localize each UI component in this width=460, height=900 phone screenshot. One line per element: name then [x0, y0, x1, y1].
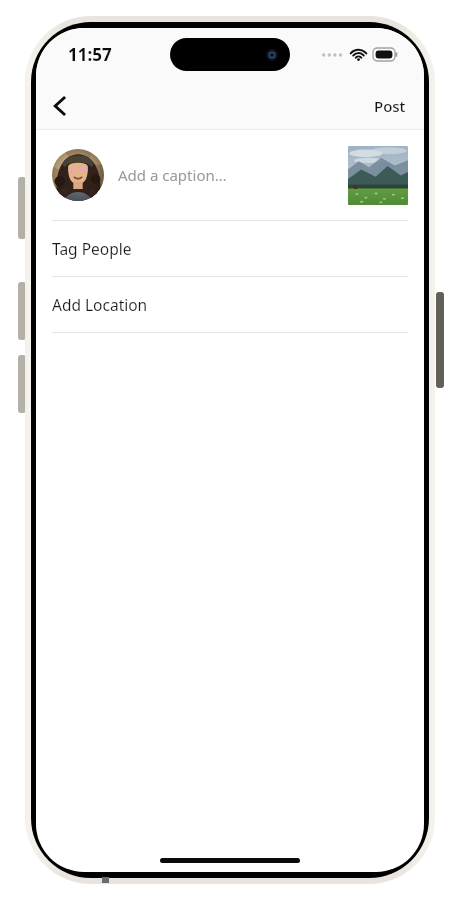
- button[interactable]: Selected photo: [348, 146, 408, 205]
- staticText: Tag People: [52, 238, 132, 259]
- staticText: 11:57: [68, 43, 112, 66]
- button[interactable]: Add Location: [36, 277, 424, 332]
- staticText: Post: [374, 96, 406, 116]
- button[interactable]: Back: [36, 82, 84, 130]
- button[interactable]: Post: [356, 86, 424, 126]
- button[interactable]: Add a caption…: [36, 130, 424, 220]
- staticText: Add Location: [52, 294, 148, 315]
- staticText: Add a caption…: [118, 165, 340, 185]
- button[interactable]: Tag People: [36, 221, 424, 276]
